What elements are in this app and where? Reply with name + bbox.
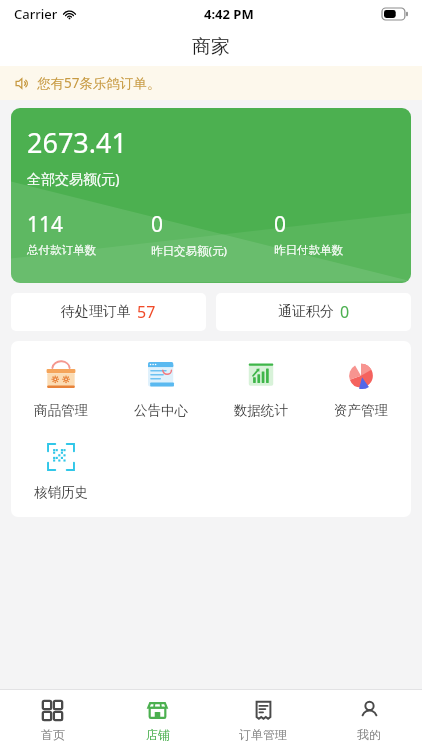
- staticText: 全部交易额(元): [27, 169, 120, 188]
- staticText: 待处理订单: [61, 303, 131, 321]
- staticText: 2673.41: [27, 124, 127, 161]
- button[interactable]: 首页: [0, 690, 105, 750]
- button[interactable]: 公告中心: [111, 355, 211, 421]
- staticText: Carrier: [14, 5, 58, 23]
- button[interactable]: 资产管理: [311, 355, 411, 421]
- staticText: 资产管理: [334, 402, 388, 419]
- staticText: 4:42 PM: [204, 5, 254, 23]
- staticText: 0: [274, 210, 287, 239]
- staticText: 数据统计: [234, 402, 288, 419]
- button[interactable]: 待处理订单: [11, 293, 206, 331]
- staticText: 订单管理: [239, 727, 287, 742]
- staticText: 0: [340, 301, 350, 323]
- staticText: 我的: [357, 727, 381, 742]
- staticText: 商品管理: [34, 402, 88, 419]
- staticText: 核销历史: [34, 484, 88, 501]
- button[interactable]: 核销历史: [11, 437, 111, 503]
- button[interactable]: 您有57条乐鸽订单。: [0, 66, 422, 100]
- staticText: 总付款订单数: [27, 243, 96, 257]
- staticText: 114: [27, 210, 64, 239]
- staticText: 0: [151, 210, 164, 239]
- staticText: 首页: [41, 727, 65, 742]
- button[interactable]: 我的: [316, 690, 422, 750]
- staticText: 商家: [192, 35, 230, 59]
- button[interactable]: 商品管理: [11, 355, 111, 421]
- button[interactable]: 订单管理: [210, 690, 316, 750]
- button[interactable]: 店铺: [105, 690, 210, 750]
- staticText: 昨日付款单数: [274, 243, 343, 257]
- button[interactable]: 通证积分: [216, 293, 411, 331]
- staticText: 公告中心: [134, 402, 188, 419]
- staticText: 通证积分: [278, 303, 334, 321]
- staticText: 昨日交易额(元): [151, 243, 227, 259]
- staticText: 您有57条乐鸽订单。: [37, 74, 161, 92]
- button[interactable]: 2673.41: [11, 108, 411, 283]
- button[interactable]: 数据统计: [211, 355, 311, 421]
- staticText: 57: [137, 301, 156, 323]
- staticText: 店铺: [146, 727, 170, 742]
